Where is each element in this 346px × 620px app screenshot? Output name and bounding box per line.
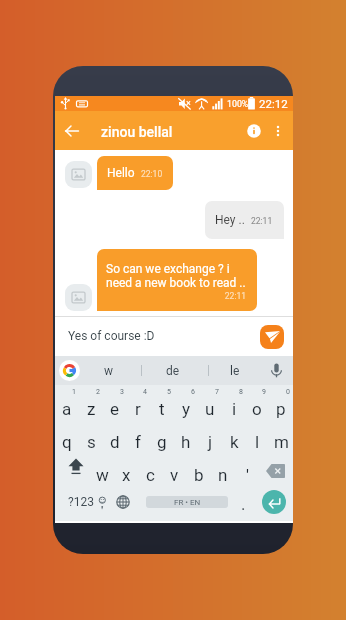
staticText: v xyxy=(170,465,179,485)
staticText: a xyxy=(62,399,72,419)
button[interactable]: de xyxy=(145,356,201,385)
button[interactable]: m xyxy=(269,421,293,454)
staticText: 6 xyxy=(191,388,195,396)
button[interactable]: 0 xyxy=(269,388,293,421)
staticText: le xyxy=(230,364,240,378)
button[interactable]: FR • EN xyxy=(146,496,228,508)
staticText: 2 xyxy=(96,388,100,396)
button[interactable]: f xyxy=(126,421,150,454)
staticText: j xyxy=(208,432,213,452)
staticText: c xyxy=(146,465,155,485)
button[interactable]: c xyxy=(139,454,161,487)
button[interactable]: Hey .. xyxy=(205,201,284,239)
staticText: 22:11 xyxy=(251,216,273,226)
button[interactable]: Voice input xyxy=(266,360,287,381)
staticText: l xyxy=(255,432,260,452)
button[interactable]: Backspace xyxy=(263,457,288,485)
staticText: zinou bellal xyxy=(101,124,173,140)
staticText: 0 xyxy=(286,388,290,396)
button[interactable]: 7 xyxy=(198,388,222,421)
button[interactable]: 5 xyxy=(150,388,174,421)
button[interactable]: Contact info xyxy=(242,119,266,143)
button[interactable]: j xyxy=(198,421,222,454)
staticText: 22:10 xyxy=(141,169,163,179)
button[interactable]: Google search xyxy=(59,360,80,381)
button[interactable]: q xyxy=(55,421,79,454)
button[interactable]: 4 xyxy=(126,388,150,421)
button[interactable]: s xyxy=(79,421,103,454)
staticText: q xyxy=(62,432,72,452)
button[interactable]: So can we exchange ? i xyxy=(97,249,257,311)
button[interactable]: x xyxy=(115,454,137,487)
staticText: Yes of course :D xyxy=(68,329,155,343)
staticText: z xyxy=(87,399,96,419)
staticText: i xyxy=(232,399,237,419)
staticText: So can we exchange ? i xyxy=(106,262,230,276)
button[interactable]: w xyxy=(81,356,137,385)
staticText: g xyxy=(157,432,167,452)
button[interactable]: Enter xyxy=(262,490,286,514)
button[interactable]: Emoji xyxy=(91,490,114,514)
staticText: ?123 xyxy=(68,495,94,509)
button[interactable]: 1 xyxy=(55,388,79,421)
staticText: x xyxy=(122,465,131,485)
staticText: m xyxy=(274,432,289,452)
staticText: h xyxy=(181,432,191,452)
button[interactable]: ?123 xyxy=(62,490,100,514)
button[interactable]: Send xyxy=(260,325,284,349)
button[interactable]: 3 xyxy=(103,388,127,421)
staticText: . xyxy=(241,494,246,514)
staticText: 22:11 xyxy=(106,291,246,301)
button[interactable]: 6 xyxy=(174,388,198,421)
button[interactable]: More options xyxy=(266,119,290,143)
staticText: de xyxy=(166,364,180,378)
staticText: e xyxy=(110,399,120,419)
staticText: s xyxy=(87,432,96,452)
button[interactable]: Shift xyxy=(64,454,88,478)
button[interactable]: v xyxy=(163,454,185,487)
button[interactable]: h xyxy=(174,421,198,454)
staticText: n xyxy=(218,465,228,485)
staticText: r xyxy=(135,399,141,419)
button[interactable]: n xyxy=(212,454,234,487)
staticText: k xyxy=(230,432,239,452)
staticText: d xyxy=(110,432,120,452)
staticText: 22:12 xyxy=(259,97,288,110)
staticText: b xyxy=(194,465,204,485)
staticText: 8 xyxy=(239,388,243,396)
button[interactable]: b xyxy=(188,454,210,487)
staticText: 3 xyxy=(120,388,124,396)
button[interactable]: g xyxy=(150,421,174,454)
staticText: Hello xyxy=(107,166,135,180)
staticText: y xyxy=(182,399,191,419)
button[interactable]: . xyxy=(232,490,254,514)
staticText: o xyxy=(252,399,262,419)
staticText: FR • EN xyxy=(174,498,201,507)
staticText: u xyxy=(205,399,215,419)
staticText: w xyxy=(96,465,109,485)
staticText: Hey .. xyxy=(215,213,245,227)
staticText: 1 xyxy=(72,388,76,396)
button[interactable]: l xyxy=(245,421,269,454)
staticText: w xyxy=(104,364,114,378)
button[interactable]: k xyxy=(222,421,246,454)
staticText: 7 xyxy=(215,388,219,396)
staticText: 4 xyxy=(143,388,147,396)
staticText: ' xyxy=(246,465,249,485)
staticText: 100% xyxy=(227,99,249,109)
button[interactable]: Hello xyxy=(97,156,173,190)
button[interactable]: ' xyxy=(236,454,258,487)
button[interactable]: 9 xyxy=(245,388,269,421)
staticText: p xyxy=(276,399,286,419)
button[interactable]: d xyxy=(103,421,127,454)
button[interactable]: Change keyboard language xyxy=(113,490,134,514)
staticText: 5 xyxy=(167,388,171,396)
button[interactable]: Back xyxy=(60,119,84,143)
button[interactable]: le xyxy=(207,356,263,385)
staticText: f xyxy=(135,432,141,452)
staticText: t xyxy=(159,399,165,419)
staticText: need a new book to read .. xyxy=(106,276,246,290)
button[interactable]: 8 xyxy=(222,388,246,421)
button[interactable]: 2 xyxy=(79,388,103,421)
button[interactable]: w xyxy=(91,454,113,487)
